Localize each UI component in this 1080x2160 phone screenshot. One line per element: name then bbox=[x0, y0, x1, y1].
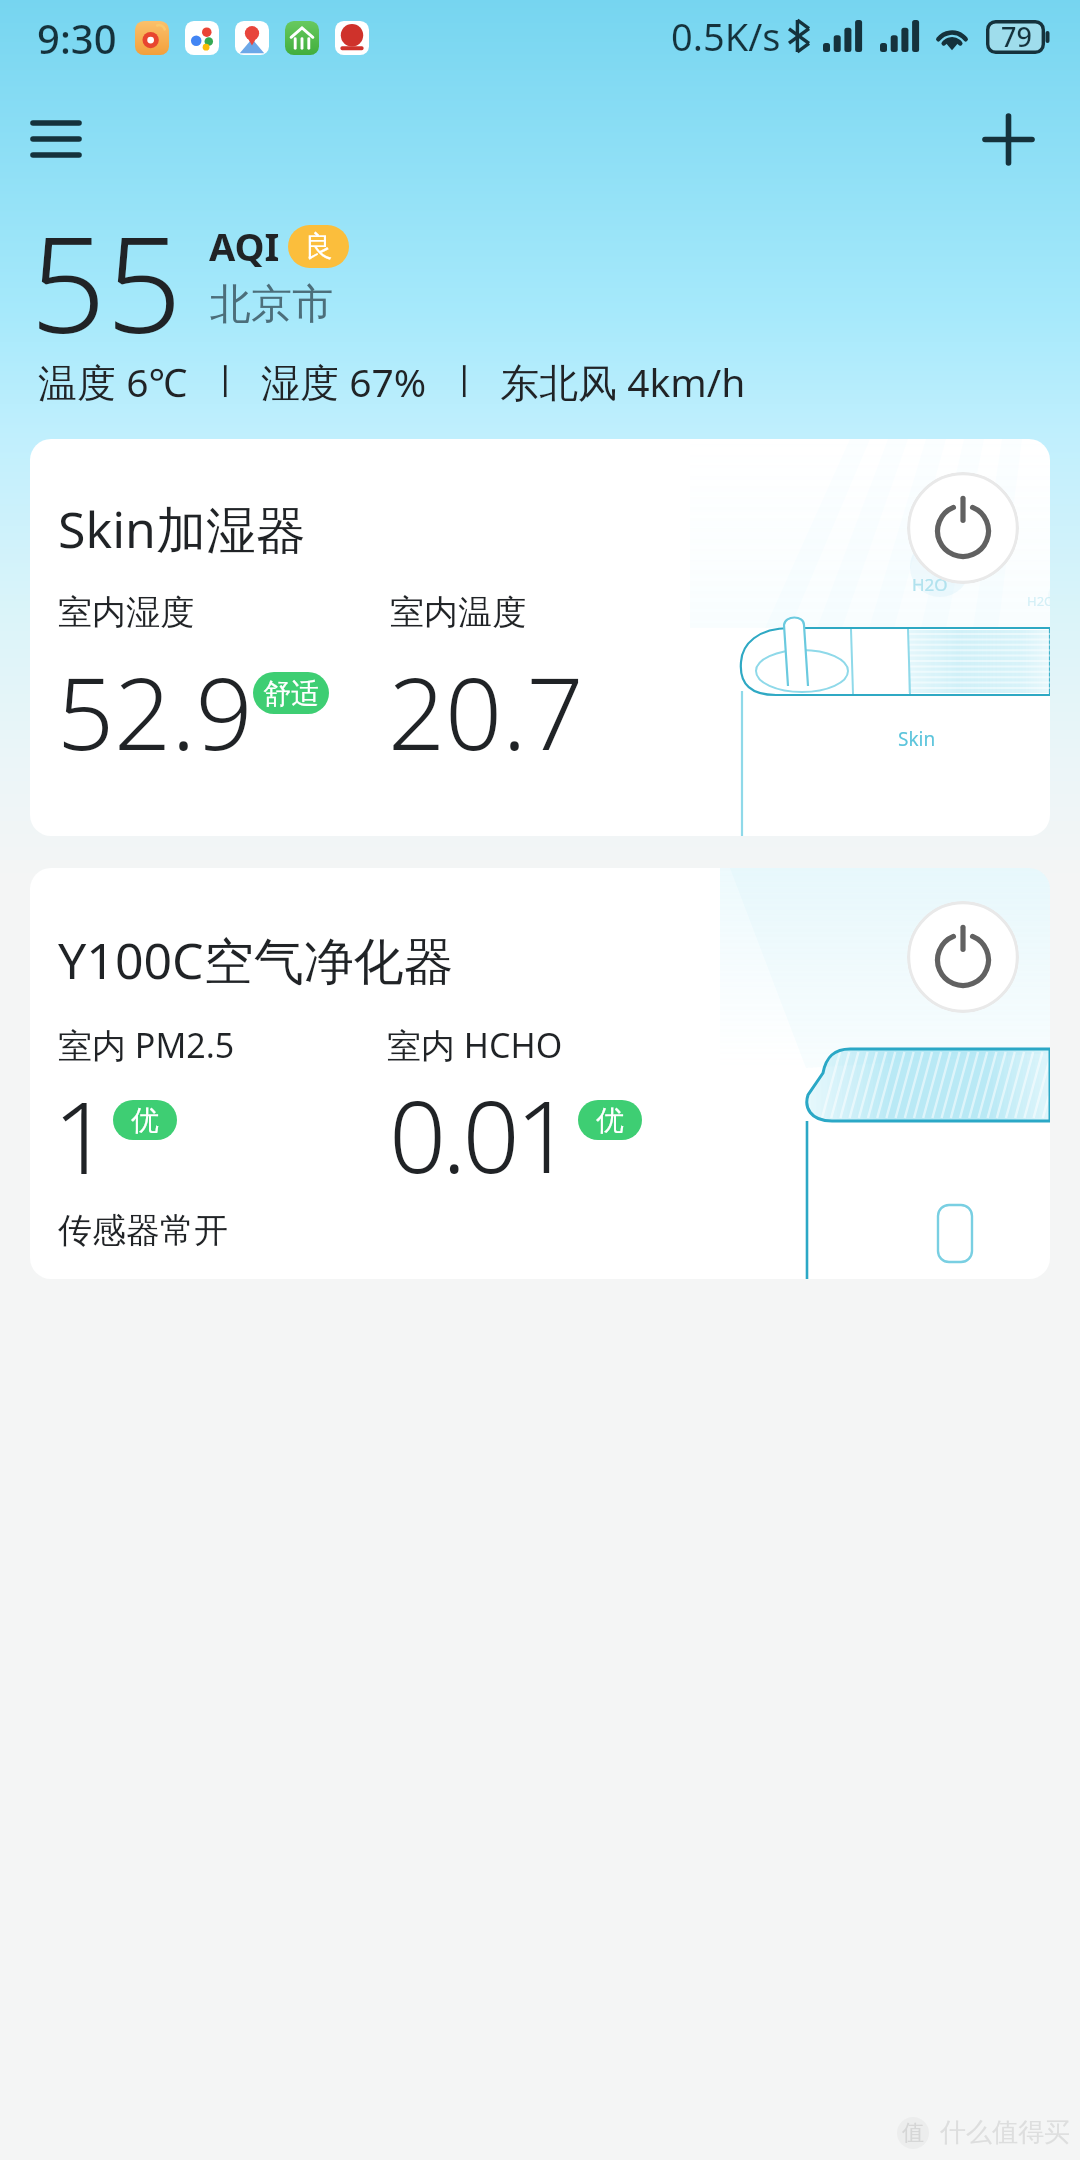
staticText: 9:30 bbox=[37, 11, 117, 65]
staticText: 0.5K/s bbox=[671, 10, 781, 62]
staticText: 北京市 bbox=[210, 279, 333, 331]
button[interactable]: Y100C空气净化器 bbox=[30, 868, 1050, 1279]
staticText: 湿度 67% bbox=[261, 355, 427, 408]
staticText: 东北风 4km/h bbox=[500, 355, 746, 408]
staticText: 20.7 bbox=[388, 643, 584, 779]
staticText: 52.9 bbox=[57, 643, 253, 779]
staticText: 室内 HCHO bbox=[387, 1022, 563, 1068]
button[interactable]: Add device bbox=[962, 93, 1054, 185]
staticText: 优 bbox=[131, 1103, 159, 1138]
staticText: 传感器常开 bbox=[58, 1209, 228, 1252]
staticText: 室内湿度 bbox=[58, 591, 194, 634]
staticText: 1 bbox=[53, 1067, 111, 1203]
button[interactable]: Menu bbox=[0, 93, 112, 185]
staticText: AQI bbox=[209, 220, 280, 272]
staticText: 55 bbox=[30, 191, 182, 372]
staticText: 良 bbox=[304, 228, 333, 265]
staticText: 室内 PM2.5 bbox=[58, 1022, 235, 1068]
staticText: H2O bbox=[912, 573, 948, 596]
button[interactable]: Skin加湿器 bbox=[30, 439, 1050, 836]
staticText: 值 bbox=[902, 2119, 924, 2147]
staticText: Skin加湿器 bbox=[58, 495, 306, 563]
staticText: 0.01 bbox=[389, 1066, 569, 1202]
staticText: 什么值得买 bbox=[940, 2116, 1070, 2149]
staticText: 室内温度 bbox=[390, 591, 526, 634]
staticText: Y100C空气净化器 bbox=[58, 926, 454, 994]
staticText: 温度 6℃ bbox=[38, 355, 188, 408]
staticText: 丨 bbox=[209, 360, 243, 403]
staticText: 79 bbox=[1001, 18, 1032, 55]
staticText: 优 bbox=[596, 1103, 624, 1138]
button[interactable]: Power bbox=[907, 901, 1019, 1013]
staticText: 舒适 bbox=[263, 676, 319, 711]
staticText: H2O bbox=[1027, 592, 1050, 610]
button[interactable]: Power bbox=[907, 472, 1019, 584]
staticText: Skin bbox=[898, 726, 936, 752]
staticText: 丨 bbox=[448, 360, 482, 403]
